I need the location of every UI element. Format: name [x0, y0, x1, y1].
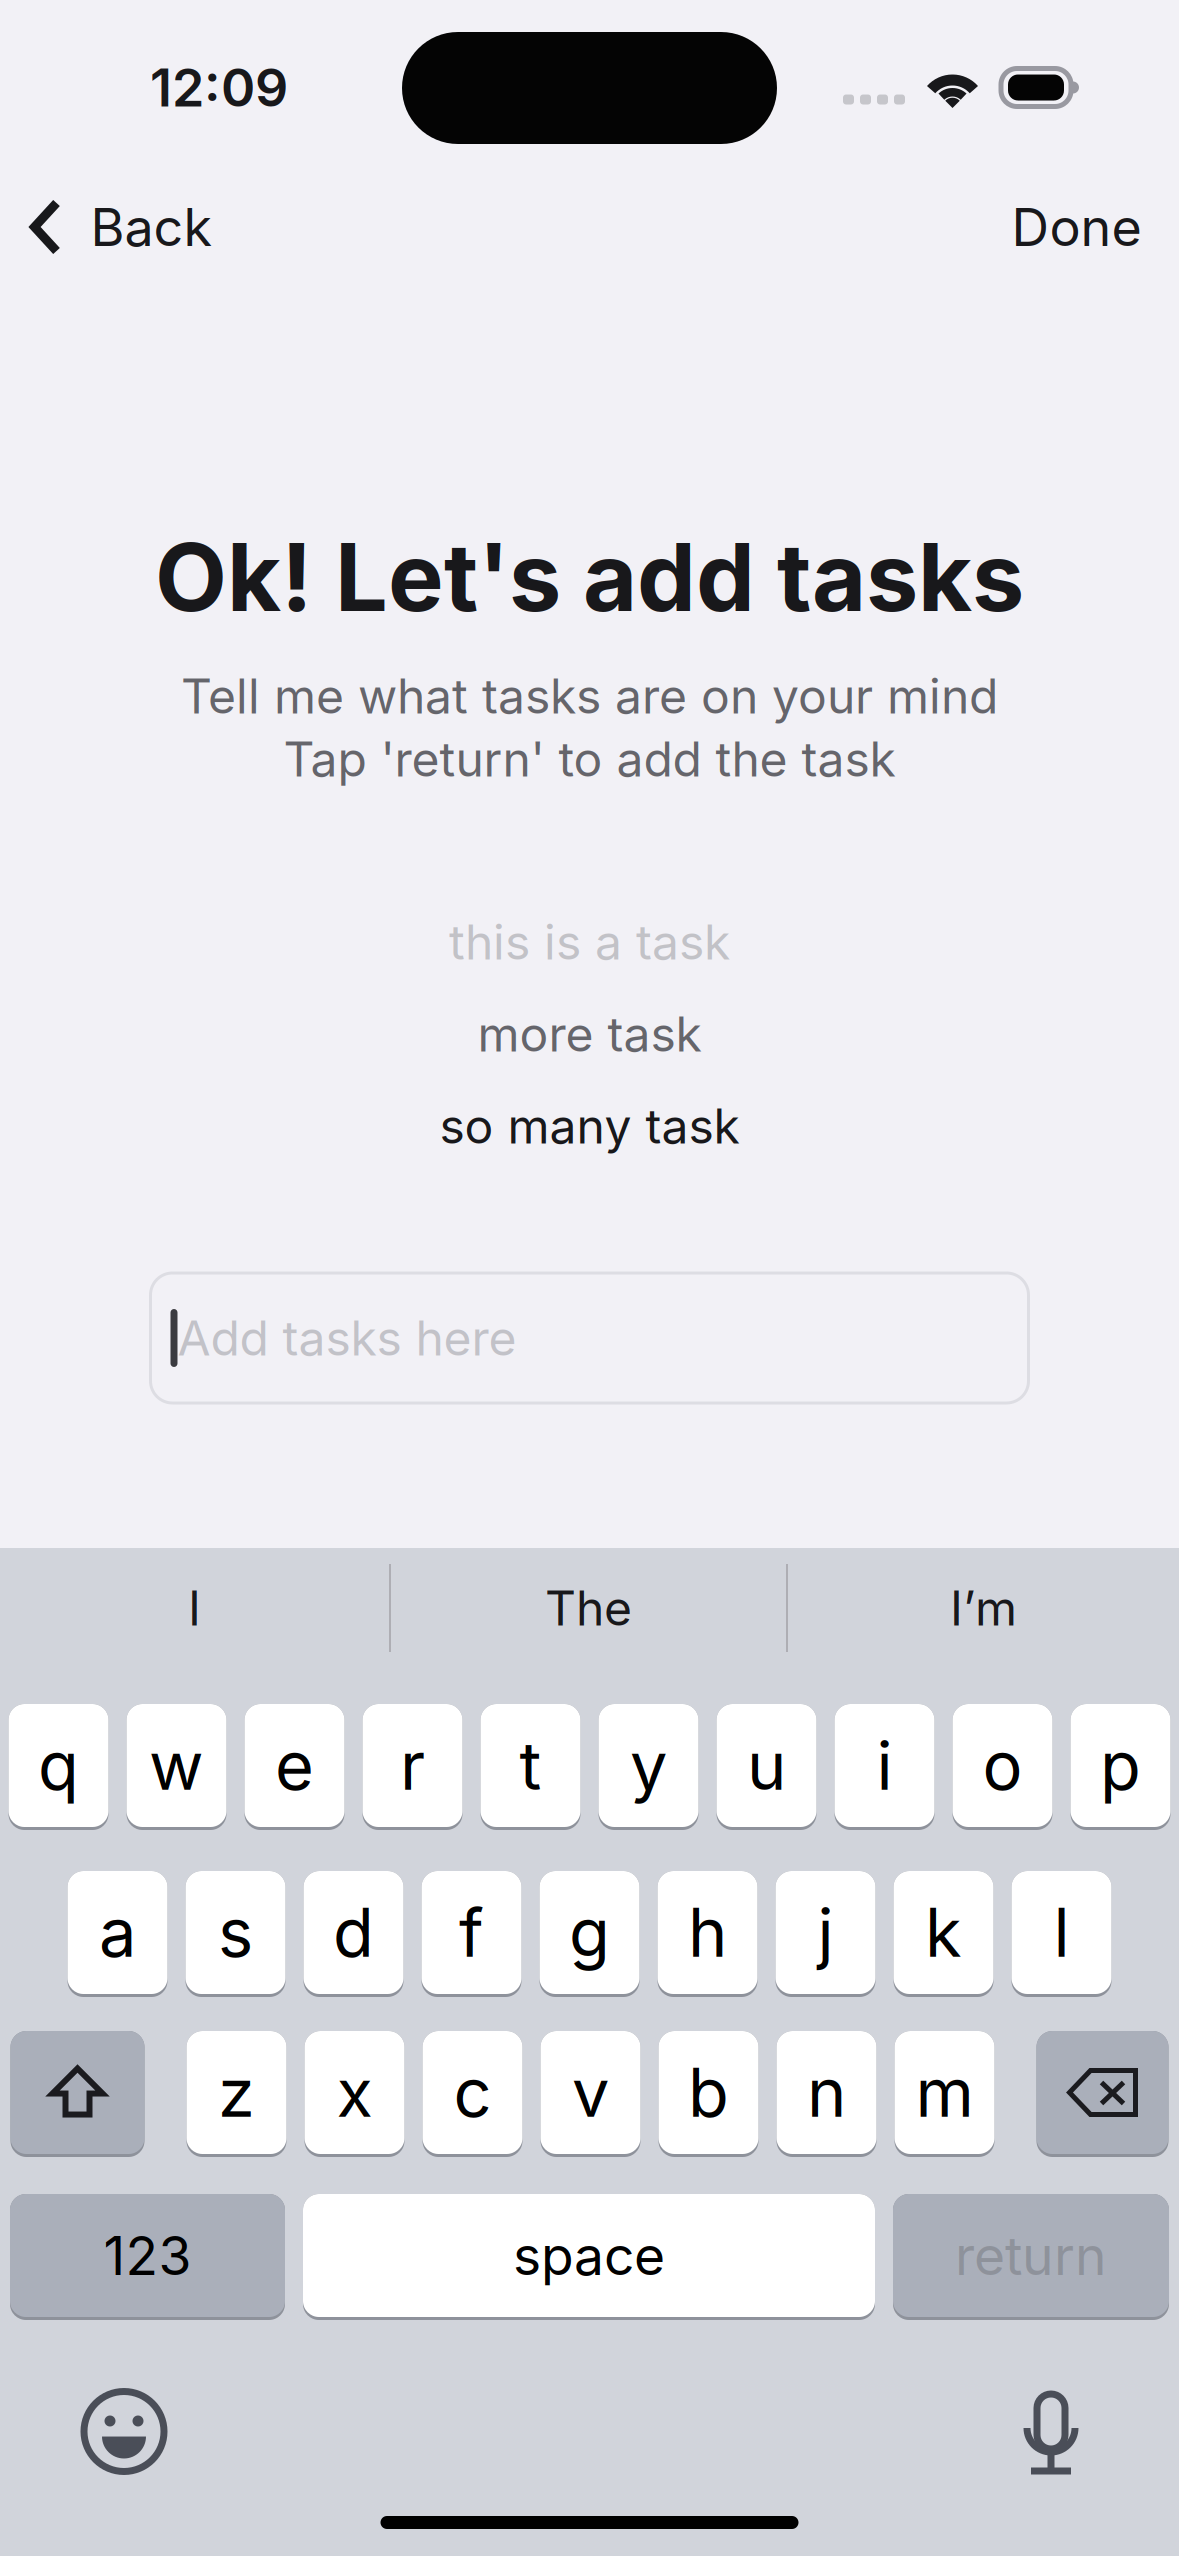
- button[interactable]: f: [421, 1871, 521, 1997]
- staticText: Ok! Let's add tasks: [155, 520, 1024, 633]
- button[interactable]: z: [186, 2031, 286, 2157]
- staticText: this is a task: [449, 913, 730, 971]
- staticText: f: [459, 1892, 484, 1973]
- button[interactable]: r: [362, 1704, 462, 1830]
- staticText: l: [1053, 1892, 1069, 1973]
- staticText: r: [400, 1725, 425, 1806]
- button[interactable]: The: [391, 1548, 786, 1668]
- staticText: p: [1100, 1725, 1141, 1806]
- staticText: s: [218, 1892, 253, 1973]
- staticText: y: [630, 1725, 667, 1806]
- staticText: a: [99, 1892, 136, 1973]
- staticText: m: [915, 2052, 973, 2133]
- button[interactable]: d: [303, 1871, 403, 1997]
- staticText: i: [876, 1725, 892, 1806]
- button[interactable]: 123: [10, 2194, 285, 2320]
- staticText: z: [218, 2052, 255, 2133]
- staticText: t: [519, 1725, 541, 1806]
- button[interactable]: v: [540, 2031, 640, 2157]
- button[interactable]: return: [893, 2194, 1169, 2320]
- button[interactable]: space: [303, 2194, 875, 2320]
- button[interactable]: o: [952, 1704, 1052, 1830]
- button[interactable]: Done: [985, 181, 1167, 272]
- staticText: u: [747, 1725, 786, 1806]
- staticText: x: [336, 2052, 372, 2133]
- staticText: 12:09: [150, 56, 288, 119]
- button[interactable]: n: [776, 2031, 876, 2157]
- staticText: c: [453, 2052, 491, 2133]
- button[interactable]: I: [0, 1548, 389, 1668]
- button[interactable]: I’m: [788, 1548, 1179, 1668]
- button[interactable]: e: [244, 1704, 344, 1830]
- button[interactable]: w: [126, 1704, 226, 1830]
- staticText: Tap 'return' to add the task: [283, 730, 895, 788]
- staticText: I’m: [950, 1579, 1017, 1637]
- button[interactable]: u: [716, 1704, 816, 1830]
- staticText: I: [188, 1579, 201, 1637]
- staticText: d: [333, 1892, 374, 1973]
- staticText: k: [925, 1892, 962, 1973]
- button[interactable]: y: [598, 1704, 698, 1830]
- button[interactable]: Back: [0, 181, 236, 272]
- staticText: o: [982, 1725, 1022, 1806]
- button[interactable]: x: [304, 2031, 404, 2157]
- button[interactable]: c: [422, 2031, 522, 2157]
- button[interactable]: Emoji: [84, 2391, 164, 2471]
- staticText: return: [955, 2223, 1107, 2288]
- staticText: Add tasks here: [177, 1309, 516, 1367]
- button[interactable]: l: [1011, 1871, 1111, 1997]
- staticText: space: [513, 2223, 665, 2288]
- button[interactable]: Shift: [10, 2031, 144, 2157]
- staticText: The: [545, 1579, 632, 1637]
- button[interactable]: k: [893, 1871, 993, 1997]
- staticText: so many task: [439, 1097, 739, 1155]
- button[interactable]: p: [1070, 1704, 1170, 1830]
- button[interactable]: s: [185, 1871, 285, 1997]
- button[interactable]: q: [8, 1704, 108, 1830]
- button[interactable]: g: [539, 1871, 639, 1997]
- staticText: v: [572, 2052, 609, 2133]
- button[interactable]: Delete: [1036, 2031, 1168, 2157]
- staticText: b: [688, 2052, 729, 2133]
- staticText: e: [275, 1725, 314, 1806]
- button[interactable]: m: [894, 2031, 994, 2157]
- staticText: h: [688, 1892, 727, 1973]
- staticText: q: [38, 1725, 79, 1806]
- button[interactable]: b: [658, 2031, 758, 2157]
- staticText: more task: [477, 1005, 701, 1063]
- button[interactable]: Dictate: [1023, 2384, 1079, 2479]
- button[interactable]: i: [834, 1704, 934, 1830]
- staticText: Back: [90, 195, 212, 258]
- staticText: n: [807, 2052, 846, 2133]
- button[interactable]: j: [775, 1871, 875, 1997]
- button[interactable]: t: [480, 1704, 580, 1830]
- staticText: g: [569, 1892, 610, 1973]
- staticText: j: [817, 1892, 833, 1973]
- button[interactable]: h: [657, 1871, 757, 1997]
- staticText: Tell me what tasks are on your mind: [181, 667, 998, 725]
- staticText: 123: [103, 2223, 191, 2288]
- staticText: Done: [1011, 195, 1141, 258]
- button[interactable]: a: [67, 1871, 167, 1997]
- staticText: w: [149, 1725, 204, 1806]
